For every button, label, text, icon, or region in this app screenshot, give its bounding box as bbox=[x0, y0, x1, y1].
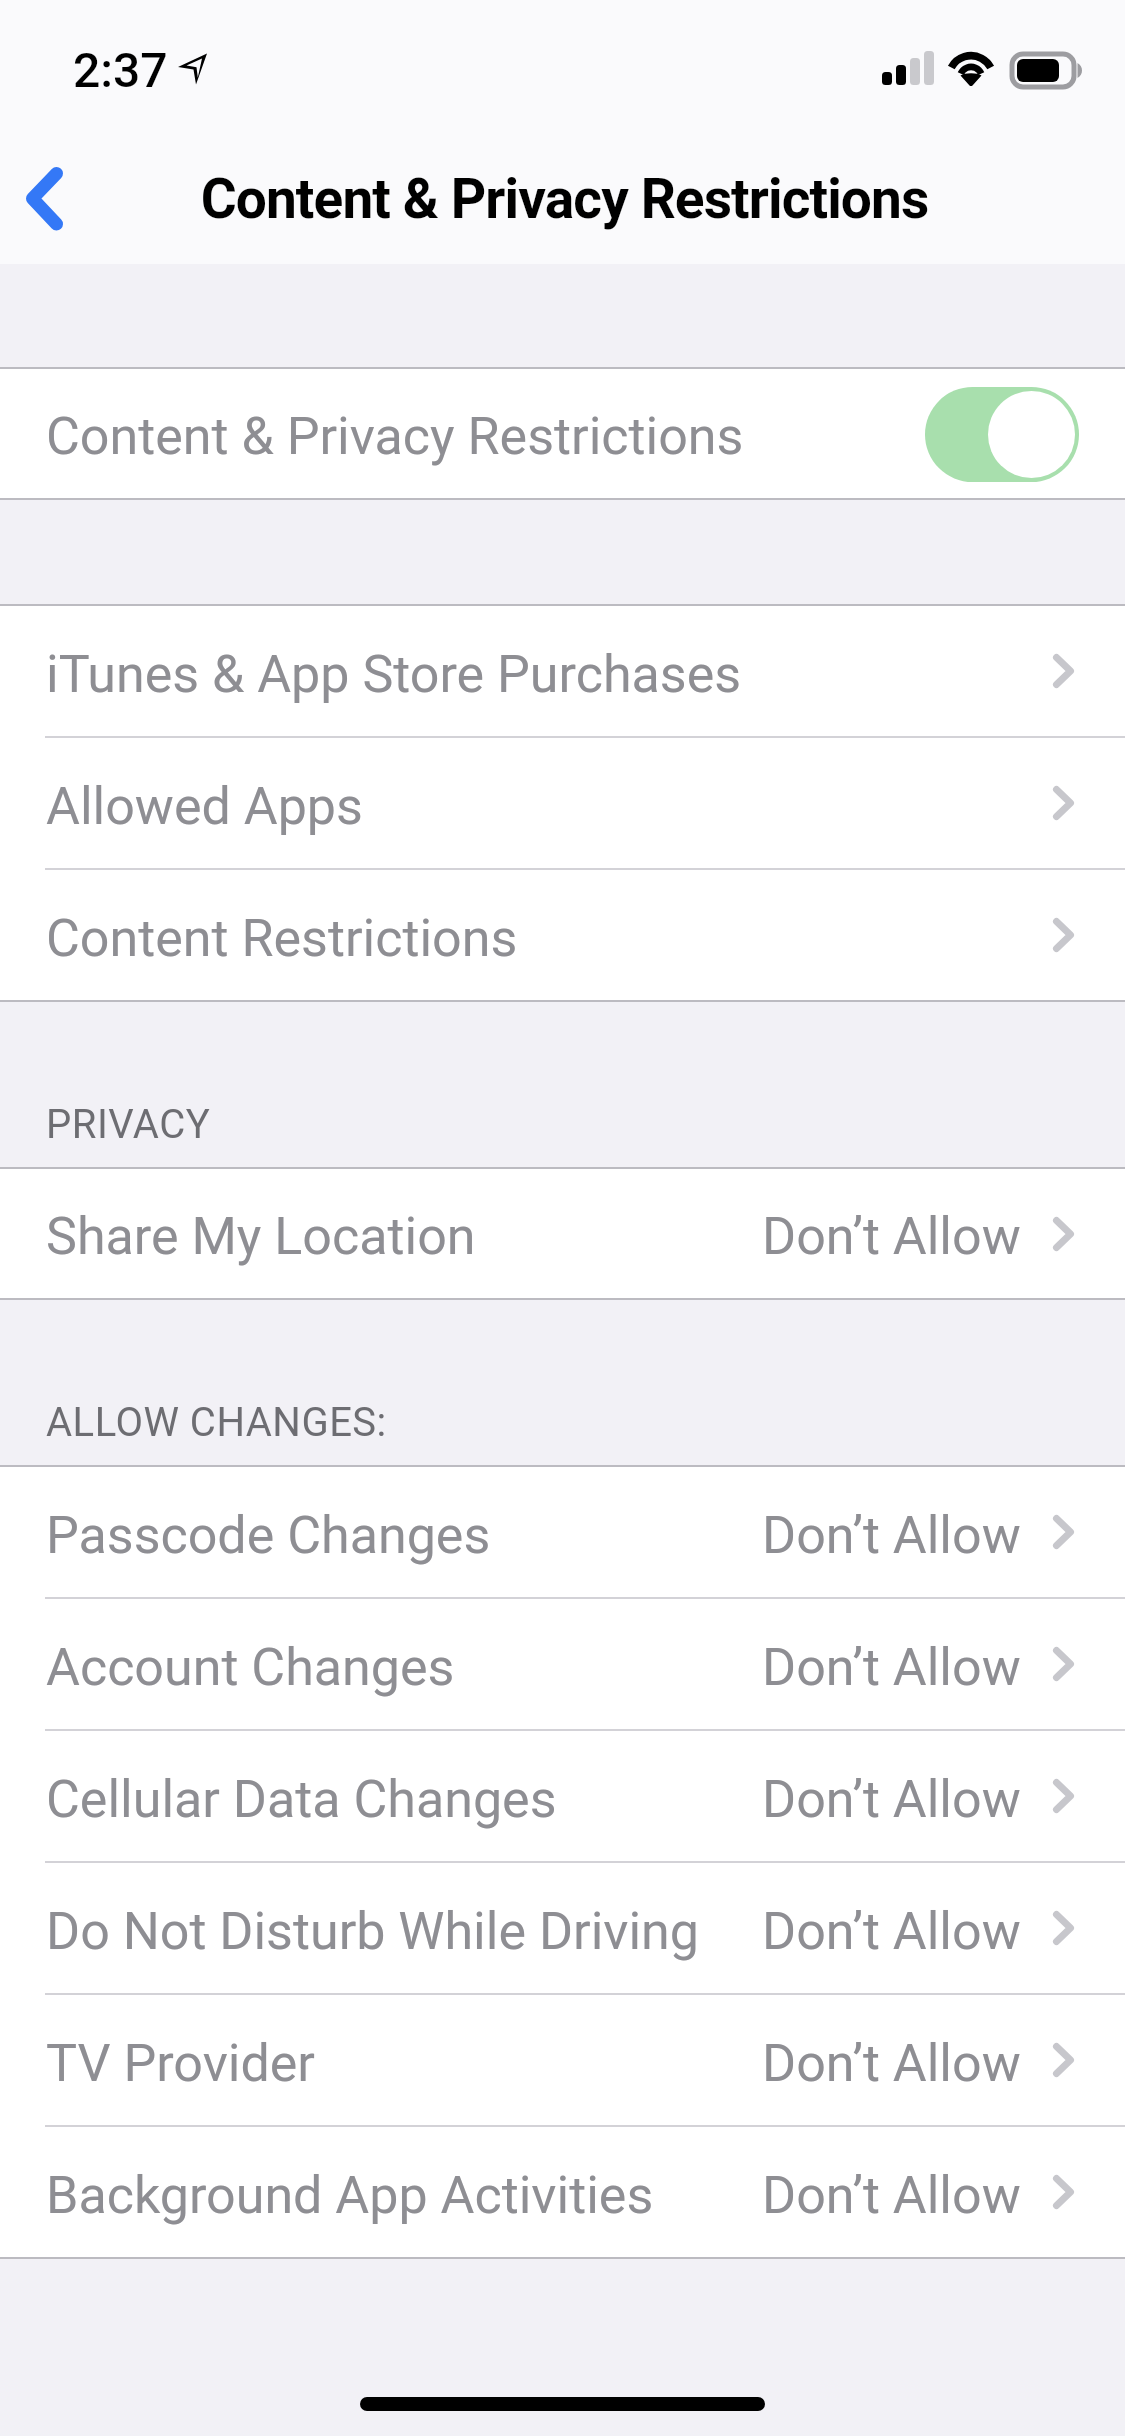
button[interactable]: Back bbox=[0, 132, 96, 264]
staticText: Account Changes bbox=[46, 1637, 455, 1698]
staticText: Share My Location bbox=[46, 1206, 476, 1267]
staticText: Don’t Allow bbox=[762, 1769, 1021, 1830]
button[interactable]: Allowed Apps bbox=[0, 738, 1125, 868]
staticText: ALLOW CHANGES: bbox=[46, 1399, 387, 1446]
staticText: Don’t Allow bbox=[762, 2033, 1021, 2094]
button[interactable]: TV Provider bbox=[0, 1995, 1125, 2125]
staticText: TV Provider bbox=[46, 2033, 315, 2094]
staticText: Don’t Allow bbox=[762, 1637, 1021, 1698]
staticText: Do Not Disturb While Driving bbox=[46, 1901, 700, 1962]
staticText: Don’t Allow bbox=[762, 1901, 1021, 1962]
staticText: Background App Activities bbox=[46, 2165, 654, 2226]
button[interactable]: Do Not Disturb While Driving bbox=[0, 1863, 1125, 1993]
button[interactable]: Share My Location bbox=[0, 1169, 1125, 1298]
staticText: Passcode Changes bbox=[46, 1505, 491, 1566]
staticText: Allowed Apps bbox=[46, 776, 363, 837]
button[interactable]: Cellular Data Changes bbox=[0, 1731, 1125, 1861]
staticText: Content Restrictions bbox=[46, 908, 518, 969]
button[interactable]: Background App Activities bbox=[0, 2127, 1125, 2257]
staticText: PRIVACY bbox=[46, 1101, 211, 1148]
staticText: Content & Privacy Restrictions bbox=[2, 167, 1125, 231]
staticText: Don’t Allow bbox=[762, 1206, 1021, 1267]
button[interactable]: Content & Privacy Restrictions bbox=[0, 369, 1125, 498]
staticText: Content & Privacy Restrictions bbox=[46, 406, 744, 467]
button[interactable]: Account Changes bbox=[0, 1599, 1125, 1729]
staticText: Don’t Allow bbox=[762, 1505, 1021, 1566]
button[interactable]: Content & Privacy Restrictions toggle, o… bbox=[925, 387, 1079, 482]
staticText: Cellular Data Changes bbox=[46, 1769, 557, 1830]
button[interactable]: Content Restrictions bbox=[0, 870, 1125, 1000]
button[interactable]: Passcode Changes bbox=[0, 1467, 1125, 1597]
staticText: iTunes & App Store Purchases bbox=[46, 644, 742, 705]
button[interactable]: iTunes & App Store Purchases bbox=[0, 606, 1125, 736]
staticText: Don’t Allow bbox=[762, 2165, 1021, 2226]
staticText: 2:37 bbox=[73, 42, 168, 98]
